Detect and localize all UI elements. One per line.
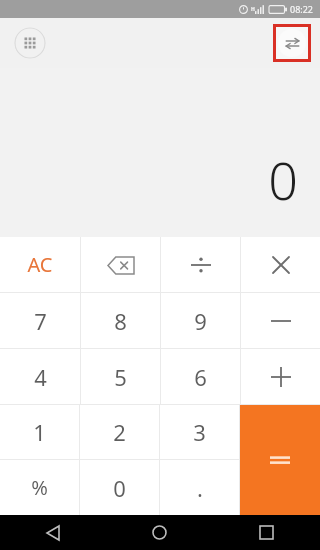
button[interactable]: 8 <box>81 293 160 348</box>
button[interactable]: Unit converter <box>276 27 308 59</box>
button[interactable]: Recent apps <box>213 515 320 550</box>
button[interactable]: Equals <box>240 405 320 515</box>
staticText: H <box>251 6 255 13</box>
staticText: 5 <box>114 362 127 392</box>
staticText: 08:22 <box>290 3 314 15</box>
staticText: 0 <box>268 144 298 215</box>
button[interactable]: Divide <box>161 237 240 292</box>
button[interactable]: AC <box>0 237 80 292</box>
staticText: 9 <box>194 306 207 336</box>
button[interactable]: % <box>0 460 79 515</box>
staticText: 3 <box>193 417 206 447</box>
button[interactable]: 9 <box>161 293 240 348</box>
button[interactable]: Plus <box>241 349 320 404</box>
button[interactable]: 0 <box>80 460 159 515</box>
other: Divide <box>186 250 216 280</box>
staticText: % <box>31 474 48 501</box>
button[interactable]: 2 <box>80 405 159 459</box>
staticText: 4 <box>34 362 47 392</box>
staticText: AC <box>27 251 53 278</box>
button[interactable]: Minus <box>241 293 320 348</box>
button[interactable]: 3 <box>160 405 239 459</box>
other: Plus <box>266 362 296 392</box>
button[interactable]: More functions <box>14 27 46 59</box>
button[interactable]: Back <box>0 515 106 550</box>
staticText: 6 <box>194 362 207 392</box>
button[interactable]: 5 <box>81 349 160 404</box>
staticText: 2 <box>113 417 126 447</box>
other: Backspace <box>106 250 136 280</box>
button[interactable]: . <box>160 460 239 515</box>
button[interactable]: Home <box>106 515 213 550</box>
button[interactable]: 6 <box>161 349 240 404</box>
staticText: . <box>197 473 203 503</box>
staticText: 0 <box>113 473 126 503</box>
button[interactable]: Backspace <box>81 237 160 292</box>
button[interactable]: 7 <box>0 293 80 348</box>
button[interactable]: 4 <box>0 349 80 404</box>
staticText: 8 <box>114 306 127 336</box>
staticText: 1 <box>33 417 46 447</box>
other: Minus <box>266 306 296 336</box>
staticText: 7 <box>34 306 47 336</box>
button[interactable]: Multiply <box>241 237 320 292</box>
button[interactable]: 1 <box>0 405 79 459</box>
other: Multiply <box>266 250 296 280</box>
